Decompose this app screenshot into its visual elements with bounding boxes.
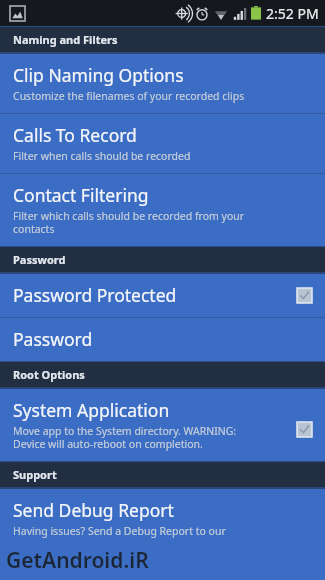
button[interactable]: Toggle Password Protected (295, 286, 313, 304)
staticText: Password (13, 327, 93, 351)
staticText: Password (13, 252, 66, 267)
button[interactable]: System Application (0, 389, 325, 461)
staticText: System Application (13, 398, 170, 422)
staticText: Contact Filtering (13, 183, 149, 207)
staticText: Password Protected (13, 283, 177, 307)
button[interactable]: Contact Filtering (0, 174, 325, 246)
staticText: Send Debug Report (13, 498, 174, 522)
button[interactable]: Send Debug Report (0, 489, 325, 548)
staticText: Naming and Filters (13, 32, 118, 47)
staticText: Calls To Record (13, 123, 137, 147)
staticText: Move app to the System directory. WARNIN… (13, 424, 237, 451)
staticText: Root Options (13, 367, 85, 382)
button[interactable]: Password (0, 318, 325, 361)
button[interactable]: Password Protected (0, 274, 325, 317)
staticText: Customize the filenames of your recorded… (13, 89, 245, 103)
staticText: Filter which calls should be recorded fr… (13, 209, 245, 236)
staticText: GetAndroid.iR (6, 546, 149, 575)
staticText: Clip Naming Options (13, 63, 184, 87)
staticText: 2:52 PM (266, 4, 319, 23)
staticText: Having issues? Send a Debug Report to ou… (13, 524, 226, 538)
button[interactable]: Calls To Record (0, 114, 325, 173)
staticText: Filter when calls should be recorded (13, 149, 191, 163)
staticText: Support (13, 467, 57, 482)
button[interactable]: Clip Naming Options (0, 54, 325, 113)
button[interactable]: Toggle System Application (295, 420, 313, 438)
